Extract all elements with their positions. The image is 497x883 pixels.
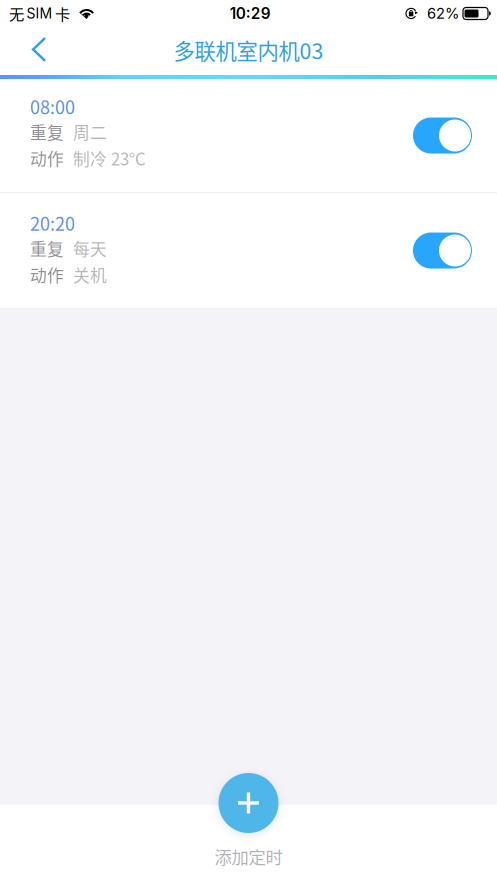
staticText: 多联机室内机03	[173, 35, 323, 65]
staticText: 08:00	[30, 93, 75, 120]
staticText: 重复	[30, 236, 64, 260]
staticText: 周二	[73, 120, 107, 144]
staticText: 动作	[30, 146, 64, 170]
staticText: 关机	[73, 263, 107, 287]
staticText: 制冷 23°C	[73, 146, 146, 170]
staticText: 添加定时	[214, 844, 282, 869]
staticText: 卡	[55, 2, 70, 25]
staticText: 每天	[73, 236, 107, 260]
staticText: SIM	[26, 5, 52, 22]
staticText: 无	[9, 2, 24, 25]
button[interactable]: Toggle schedule 08:00	[413, 117, 472, 153]
button[interactable]: 添加定时	[214, 773, 282, 869]
staticText: 10:29	[230, 4, 271, 23]
staticText: 62%	[427, 5, 459, 22]
button[interactable]: Back	[13, 29, 65, 73]
staticText: 20:20	[30, 210, 75, 236]
button[interactable]: Toggle schedule 20:20	[413, 232, 472, 268]
staticText: 动作	[30, 263, 64, 287]
staticText: 重复	[30, 120, 64, 144]
